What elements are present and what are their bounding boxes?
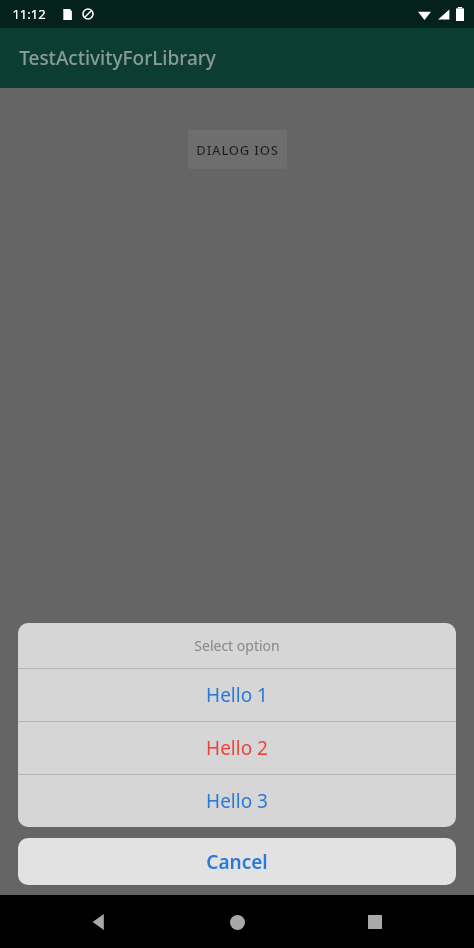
- button[interactable]: Cancel: [18, 838, 456, 885]
- staticText: 11:12: [12, 5, 46, 23]
- button[interactable]: Hello 1: [18, 669, 456, 721]
- staticText: DIALOG IOS: [196, 141, 279, 159]
- staticText: Hello 2: [206, 735, 268, 761]
- button[interactable]: Hello 3: [18, 775, 456, 827]
- button[interactable]: Home: [216, 901, 258, 943]
- staticText: Cancel: [206, 849, 268, 875]
- button[interactable]: Hello 2: [18, 722, 456, 774]
- button[interactable]: Back: [78, 901, 120, 943]
- button[interactable]: DIALOG IOS: [188, 130, 287, 169]
- staticText: TestActivityForLibrary: [19, 45, 216, 71]
- button[interactable]: Recent apps: [354, 901, 396, 943]
- staticText: Hello 3: [206, 788, 268, 814]
- staticText: Select option: [194, 636, 280, 655]
- staticText: Hello 1: [206, 682, 268, 708]
